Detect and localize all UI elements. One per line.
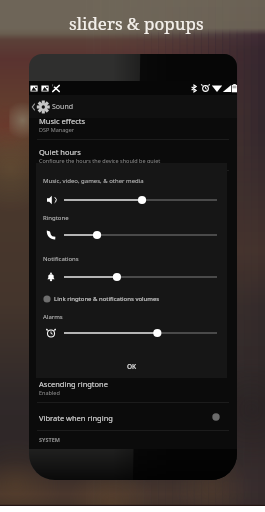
button[interactable]: Sound settings: [29, 95, 237, 118]
button[interactable]: [64, 194, 220, 206]
staticText: Quiet hours: [39, 147, 81, 157]
staticText: SYSTEM: [39, 436, 60, 443]
staticText: Sound: [52, 102, 74, 112]
staticText: Configure the hours the device should be…: [39, 157, 161, 164]
staticText: Link ringtone & notifications volumes: [54, 295, 160, 303]
staticText: Vibrate when ringing: [39, 413, 113, 423]
button[interactable]: OK: [36, 357, 227, 375]
staticText: Music effects: [39, 116, 86, 126]
staticText: Ringtone: [43, 214, 69, 222]
button[interactable]: Quiet hours: [29, 143, 237, 169]
staticText: OK: [127, 362, 137, 371]
button[interactable]: [64, 327, 220, 339]
staticText: Enabled: [39, 389, 60, 396]
button[interactable]: [64, 271, 220, 283]
button[interactable]: Ascending ringtone: [29, 375, 237, 401]
button[interactable]: Link ringtone & notifications volumes: [40, 291, 225, 307]
staticText: sliders & popups: [69, 12, 204, 35]
staticText: Alarms: [43, 313, 63, 321]
staticText: Music, video, games, & other media: [43, 177, 144, 185]
button[interactable]: Music effects: [29, 112, 237, 138]
staticText: Ascending ringtone: [39, 379, 108, 389]
button[interactable]: Vibrate when ringing: [29, 404, 237, 429]
button[interactable]: [64, 229, 220, 241]
staticText: DSP Manager: [39, 126, 75, 133]
other: Vibrate when ringing toggle: [209, 410, 223, 424]
staticText: Notifications: [43, 255, 79, 263]
